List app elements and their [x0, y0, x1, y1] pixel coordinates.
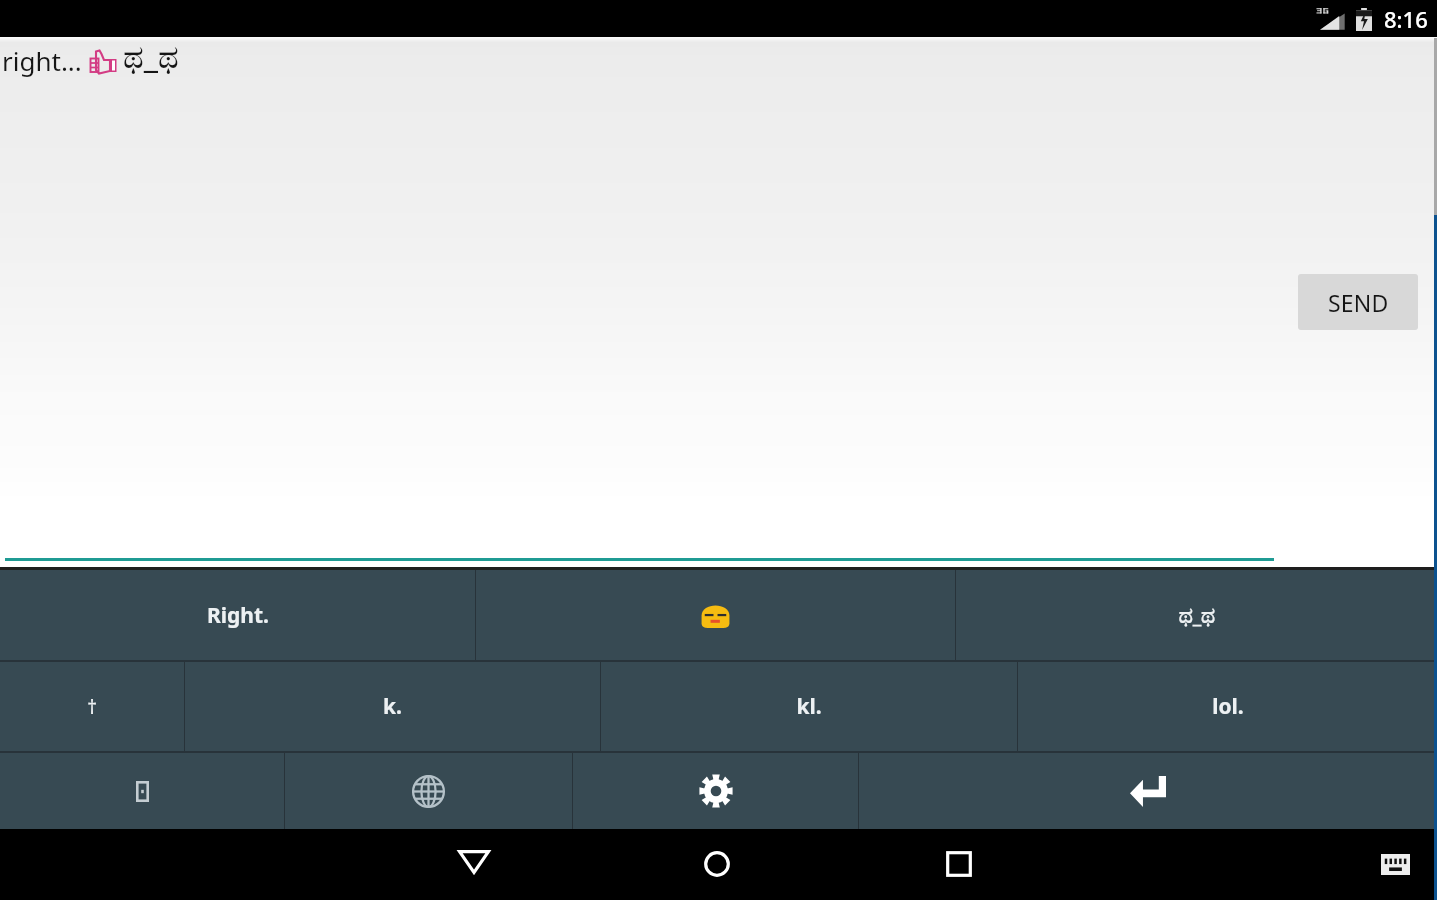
button[interactable]: Back: [458, 850, 490, 874]
button[interactable]: Right.: [0, 570, 475, 660]
staticText: Right.: [207, 601, 269, 630]
staticText: kl.: [796, 692, 822, 721]
button[interactable]: Unamused face: [476, 570, 955, 660]
staticText: right...: [2, 43, 82, 78]
button[interactable]: k.: [185, 662, 600, 751]
button[interactable]: SEND: [1298, 274, 1418, 330]
button[interactable]: Change language: [285, 753, 572, 829]
button[interactable]: lol.: [1018, 662, 1437, 751]
button[interactable]: Enter: [859, 753, 1437, 829]
staticText: SEND: [1328, 287, 1389, 318]
button[interactable]: †: [0, 662, 184, 751]
staticText: †: [87, 694, 97, 720]
staticText: 8:16: [1384, 4, 1428, 34]
staticText: k.: [383, 692, 402, 721]
staticText: ಥ_ಥ: [1179, 601, 1215, 630]
staticText: ಥ_ಥ: [123, 34, 179, 78]
button[interactable]: Message input field: [5, 37, 1275, 561]
button[interactable]: Settings: [573, 753, 858, 829]
button[interactable]: ಥ_ಥ: [956, 570, 1437, 660]
button[interactable]: Switch keyboard: [1381, 854, 1410, 875]
button[interactable]: Emoji: [0, 753, 284, 829]
button[interactable]: kl.: [601, 662, 1017, 751]
button[interactable]: Home: [704, 851, 730, 877]
button[interactable]: Recents: [946, 851, 972, 877]
staticText: lol.: [1212, 692, 1244, 721]
